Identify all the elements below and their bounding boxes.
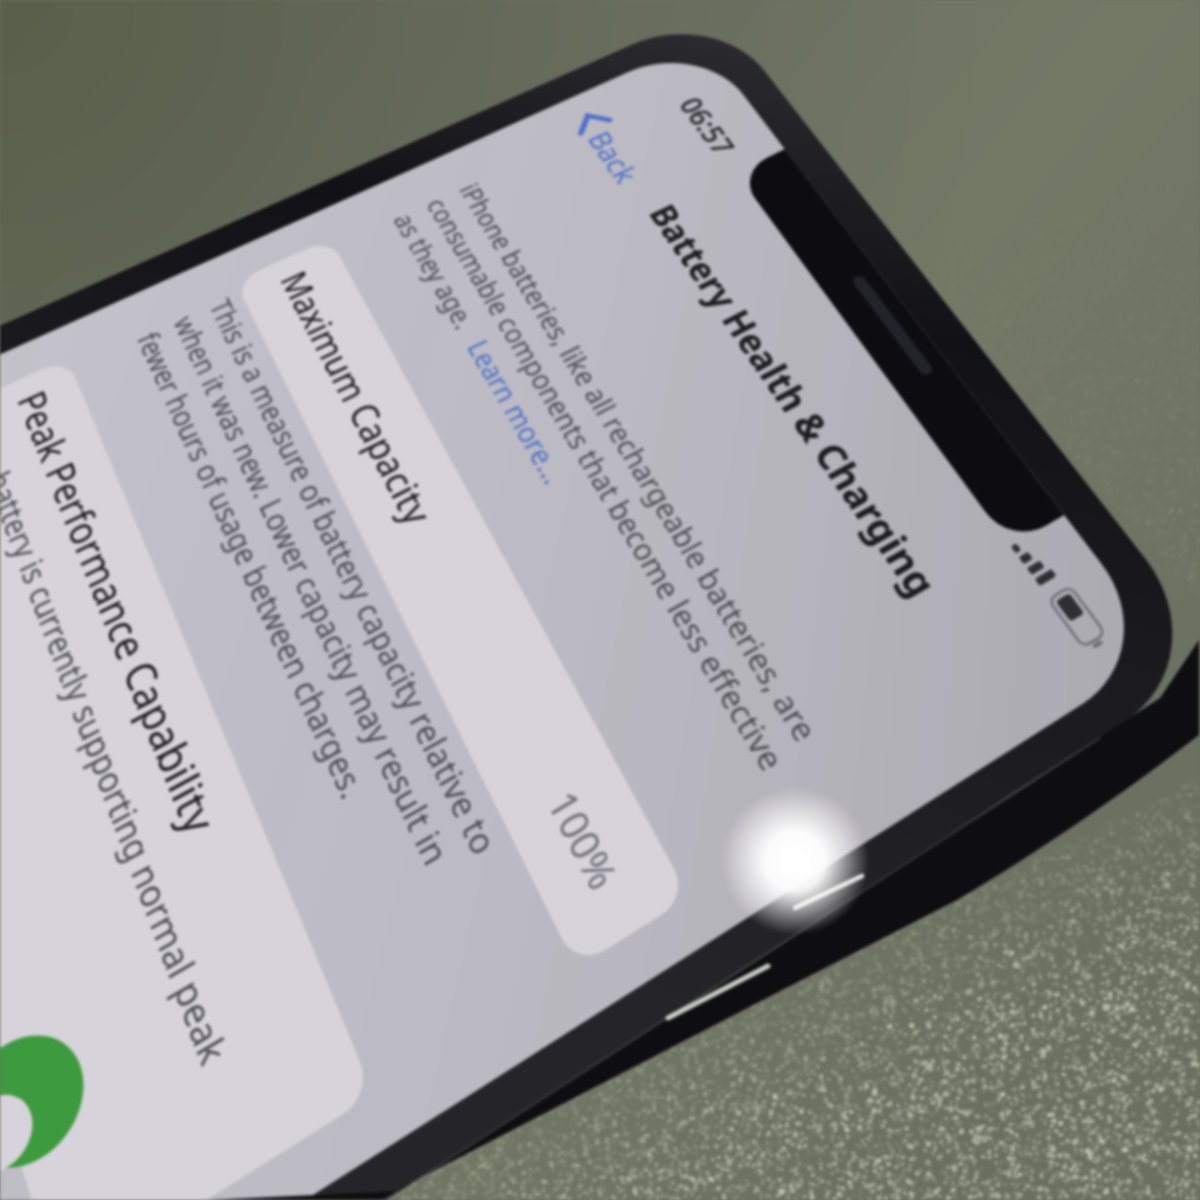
button[interactable]: iPhone showing Battery Health & Charging… — [0, 0, 1200, 1200]
